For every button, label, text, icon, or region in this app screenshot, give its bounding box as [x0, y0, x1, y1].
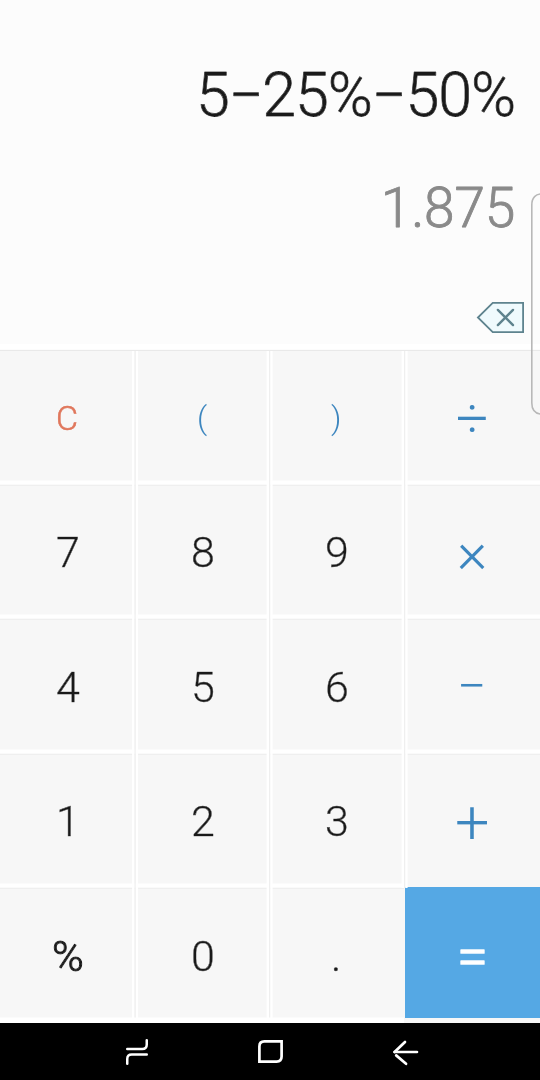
button[interactable]: 9	[269, 485, 404, 619]
staticText: 4	[56, 662, 80, 712]
button[interactable]: ×	[404, 485, 540, 619]
staticText: 2	[191, 796, 215, 846]
staticText: 1.875	[0, 176, 515, 240]
staticText: (	[197, 399, 208, 437]
button[interactable]: Back	[378, 1023, 432, 1080]
staticText: 0	[191, 931, 215, 981]
staticText: 1	[56, 796, 80, 846]
button[interactable]: 7	[0, 485, 135, 619]
button[interactable]: ÷	[404, 351, 540, 485]
button[interactable]: C	[0, 351, 135, 485]
staticText: C	[56, 398, 79, 438]
button[interactable]: .	[269, 888, 404, 1023]
button[interactable]: (	[135, 351, 270, 485]
button[interactable]: 6	[269, 619, 404, 754]
button[interactable]: Recent apps	[110, 1023, 164, 1080]
button[interactable]: 8	[135, 485, 270, 619]
button[interactable]: 3	[269, 754, 404, 888]
button[interactable]: +	[404, 754, 540, 888]
staticText: 5	[191, 662, 215, 712]
staticText: 1	[56, 796, 80, 846]
staticText: ×	[457, 518, 488, 586]
staticText: 9	[325, 527, 349, 577]
staticText: +	[455, 786, 490, 857]
staticText: .	[331, 931, 342, 981]
staticText: 5	[191, 662, 215, 712]
button[interactable]: 4	[0, 619, 135, 754]
staticText: −	[457, 656, 487, 717]
button[interactable]: 0	[135, 888, 270, 1023]
staticText: %	[52, 931, 84, 981]
staticText: 4	[56, 662, 80, 712]
staticText: 2	[191, 796, 215, 846]
staticText: C	[56, 398, 79, 438]
staticText: 8	[191, 527, 215, 577]
staticText: 6	[325, 662, 349, 712]
button[interactable]	[405, 887, 540, 1018]
button[interactable]: Backspace	[472, 292, 528, 342]
staticText: ÷	[456, 385, 489, 452]
staticText: 6	[325, 662, 349, 712]
staticText: )	[331, 399, 342, 437]
staticText: 3	[325, 796, 349, 846]
staticText: 5−25%−50%	[0, 59, 515, 130]
staticText: 7	[56, 527, 80, 577]
staticText: =	[457, 923, 488, 989]
staticText: 8	[191, 527, 215, 577]
staticText: %	[52, 931, 84, 981]
staticText: 5−25%−50%	[0, 59, 515, 130]
button[interactable]: −	[404, 619, 540, 754]
staticText: .	[331, 931, 342, 981]
staticText: =	[457, 923, 488, 989]
button[interactable]: %	[0, 888, 135, 1023]
button[interactable]: Home	[243, 1023, 297, 1080]
staticText: 9	[325, 527, 349, 577]
staticText: 0	[191, 931, 215, 981]
button[interactable]: 5	[135, 619, 270, 754]
staticText: 7	[56, 527, 80, 577]
button[interactable]: 1	[0, 754, 135, 888]
staticText: 1.875	[0, 176, 515, 240]
button[interactable]: )	[269, 351, 404, 485]
staticText: 3	[325, 796, 349, 846]
button[interactable]: 2	[135, 754, 270, 888]
